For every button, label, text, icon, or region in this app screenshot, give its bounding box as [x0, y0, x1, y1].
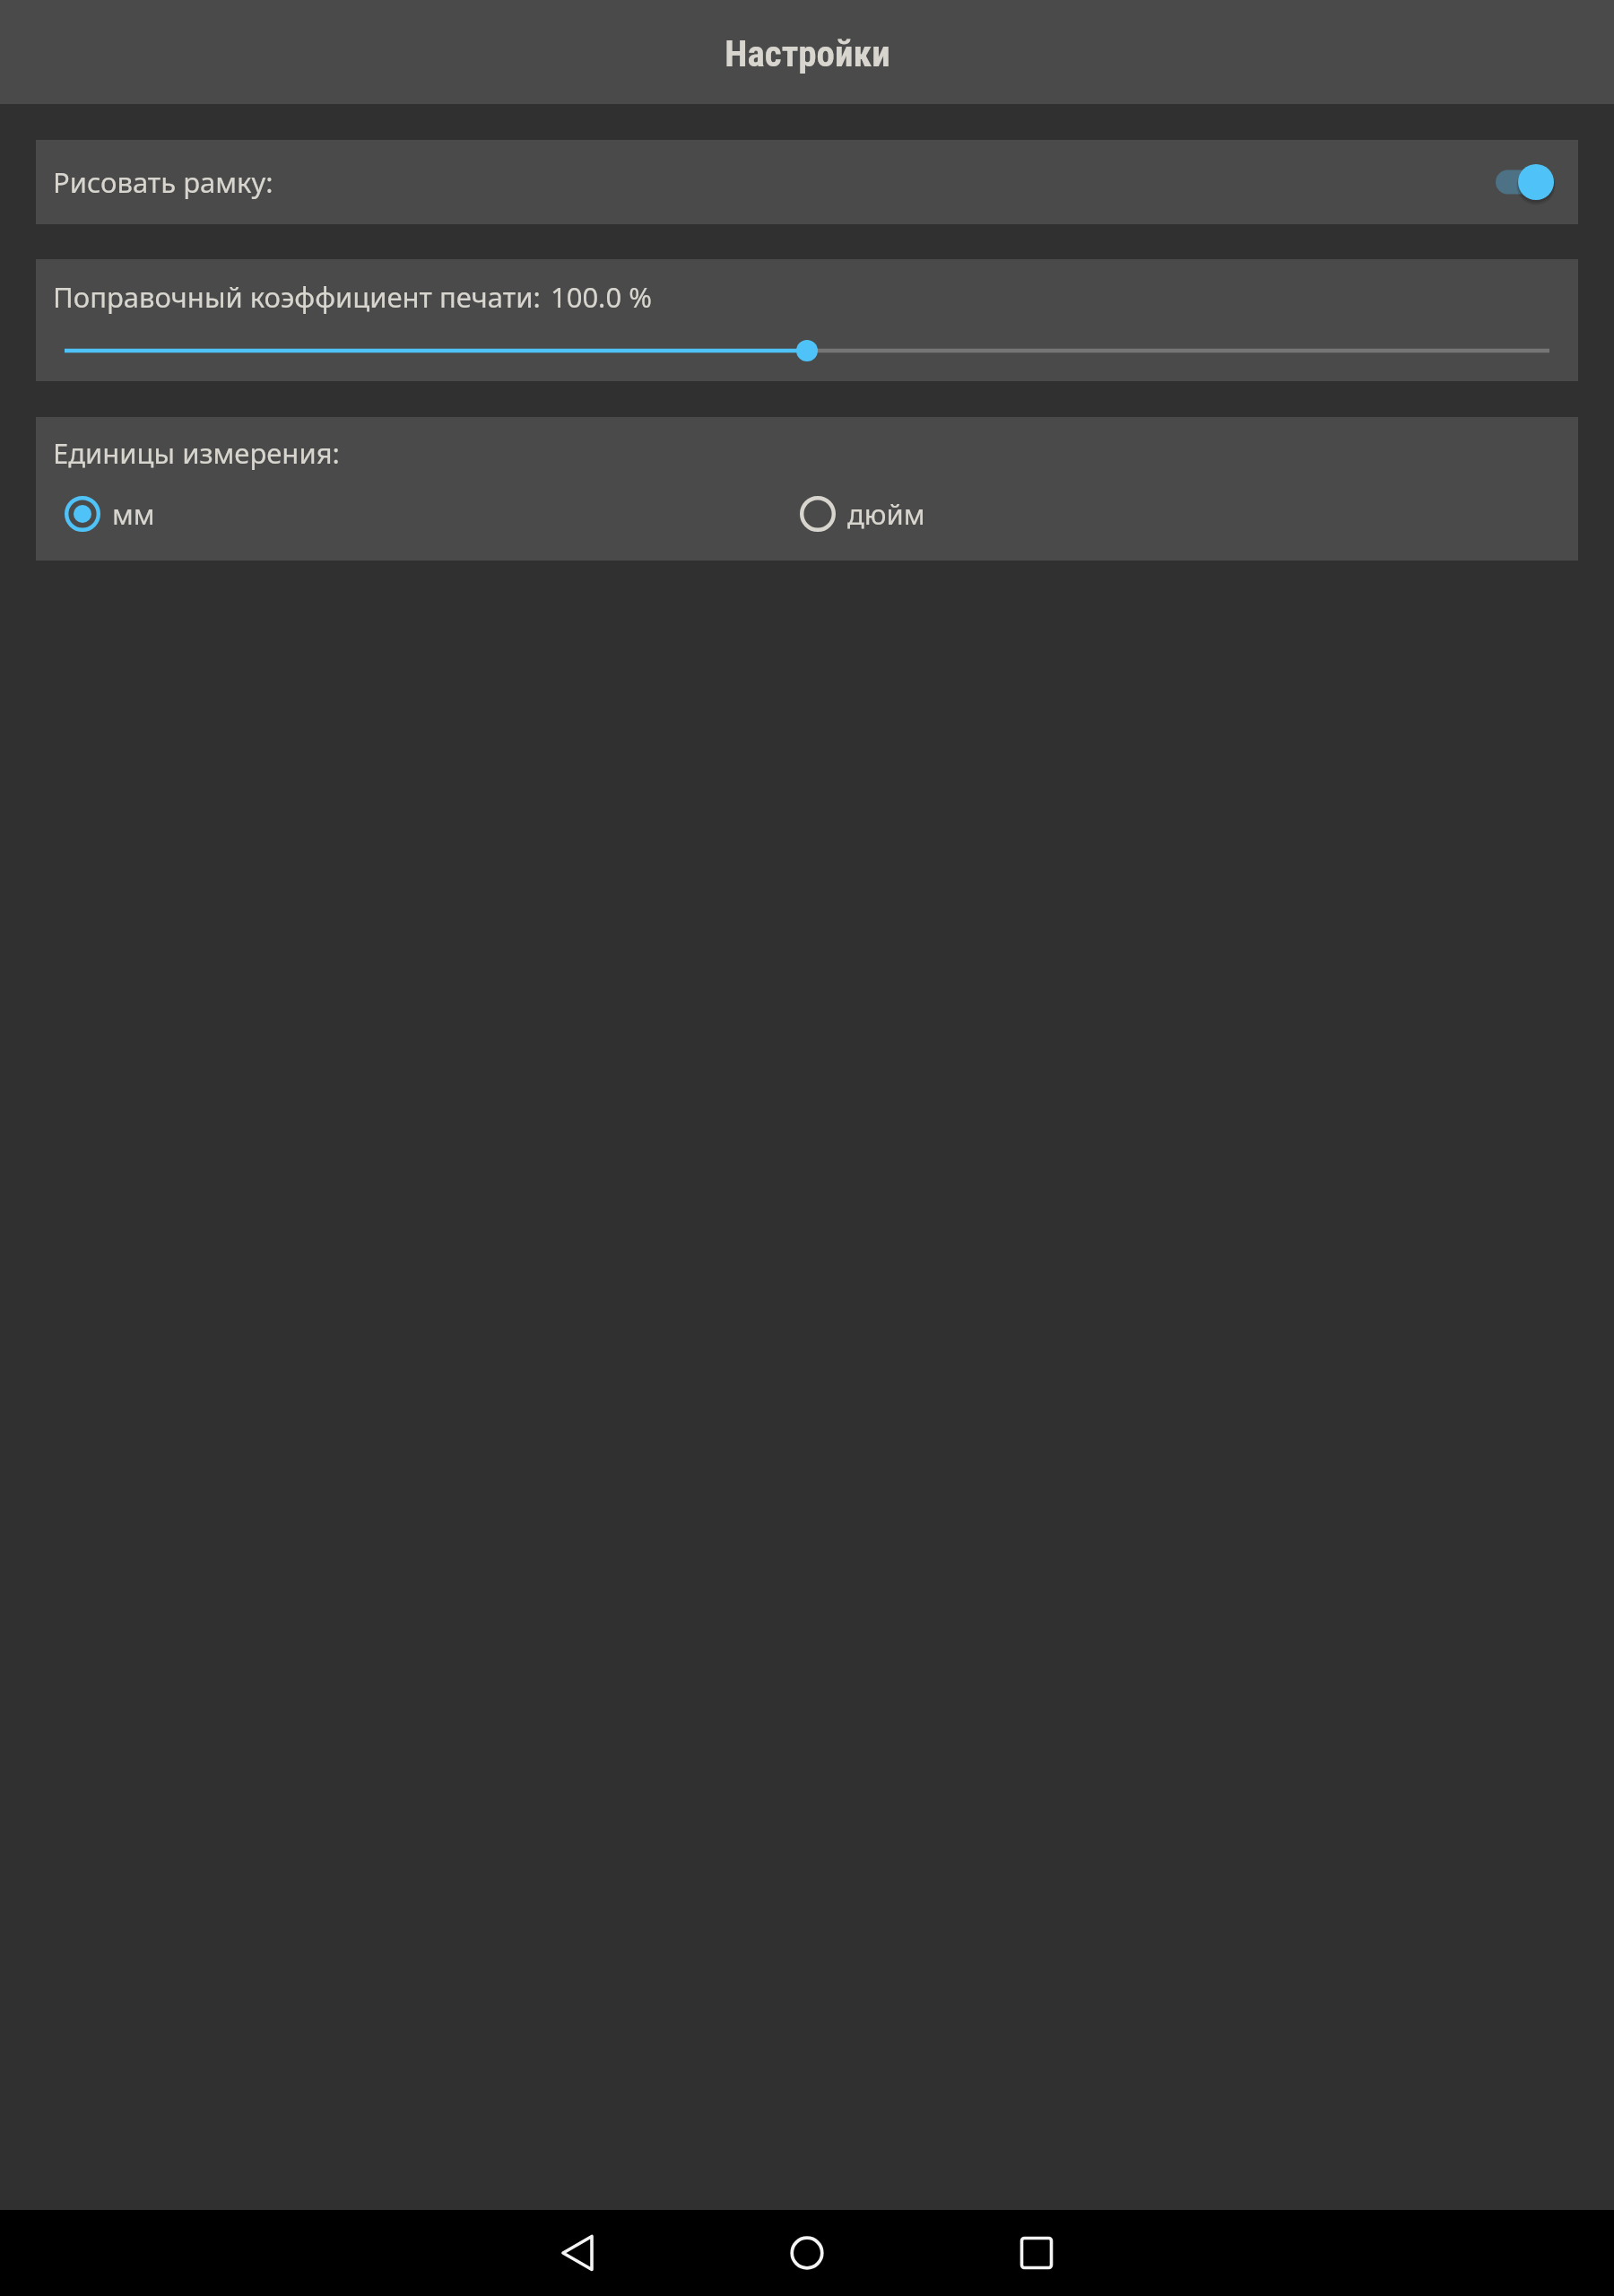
button[interactable]: Рисовать рамку: [36, 140, 1578, 224]
button[interactable]: дюйм [771, 482, 1578, 546]
button[interactable]: Print scale [36, 327, 1578, 381]
button[interactable]: мм [36, 482, 771, 546]
button[interactable]: Back [520, 2210, 635, 2296]
staticText: Рисовать рамку: [53, 163, 273, 201]
staticText: мм [112, 495, 155, 533]
staticText: Единицы измерения: [53, 434, 340, 472]
staticText: дюйм [847, 495, 925, 533]
button[interactable]: Draw frame, on [1496, 155, 1554, 209]
staticText: Поправочный коэффициент печати: 100.0 % [53, 278, 652, 316]
button[interactable]: Home [750, 2210, 864, 2296]
button[interactable]: Recent apps [979, 2210, 1094, 2296]
staticText: Настройки [725, 32, 890, 75]
